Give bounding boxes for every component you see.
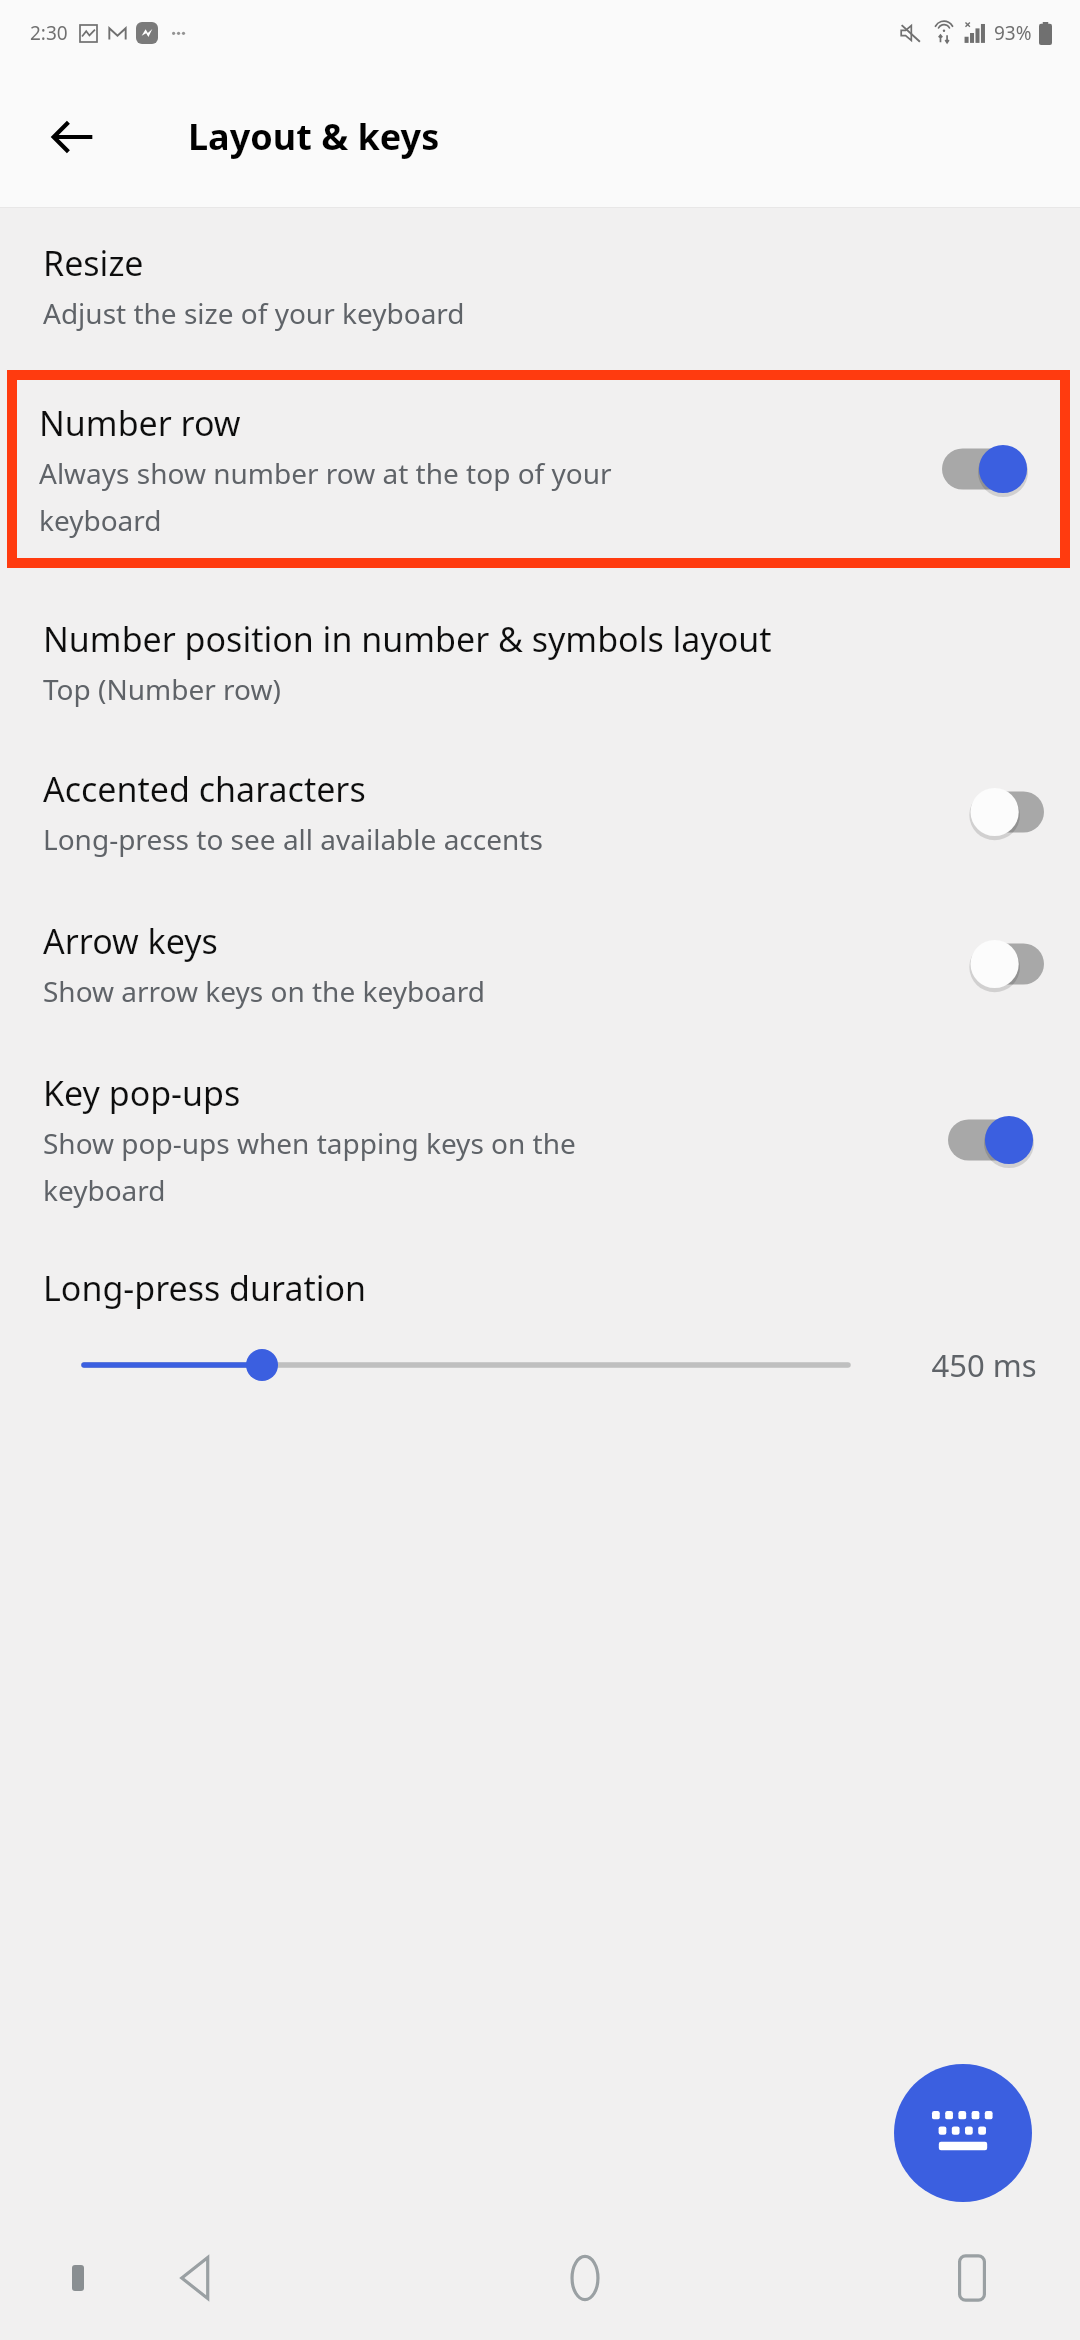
staticText: Show pop-ups when tapping keys on the ke… bbox=[43, 1124, 576, 1209]
button[interactable]: Toggle off bbox=[948, 779, 1044, 845]
button[interactable]: Back bbox=[26, 90, 120, 184]
button[interactable]: Back bbox=[150, 2230, 246, 2326]
staticText: Show arrow keys on the keyboard bbox=[43, 972, 486, 1010]
button[interactable]: Keyboard switcher bbox=[48, 2248, 108, 2308]
staticText: Long-press to see all available accents bbox=[43, 820, 543, 858]
button[interactable]: Long-press duration slider bbox=[84, 1337, 848, 1393]
button[interactable]: Toggle on bbox=[942, 436, 1038, 502]
staticText: Adjust the size of your keyboard bbox=[43, 294, 465, 332]
staticText: 2:30 bbox=[30, 20, 68, 46]
staticText: Layout & keys bbox=[188, 112, 440, 161]
staticText: 93% bbox=[994, 20, 1032, 46]
staticText: Always show number row at the top of you… bbox=[39, 454, 612, 539]
button[interactable]: Recents bbox=[924, 2230, 1020, 2326]
button[interactable]: Arrow keys bbox=[0, 918, 1080, 1010]
button[interactable]: Toggle on bbox=[948, 1107, 1044, 1173]
button[interactable]: Open keyboard bbox=[894, 2064, 1032, 2202]
staticText: Resize bbox=[43, 240, 144, 286]
staticText: Number row bbox=[39, 400, 241, 446]
button[interactable]: Resize bbox=[0, 240, 1080, 332]
button[interactable]: Number row bbox=[17, 380, 1060, 558]
button[interactable]: Accented characters bbox=[0, 766, 1080, 858]
button[interactable]: Toggle off bbox=[948, 931, 1044, 997]
staticText: 450 ms bbox=[910, 1344, 1058, 1386]
button[interactable]: Key pop-ups bbox=[0, 1070, 1080, 1209]
staticText: Long-press duration bbox=[43, 1265, 367, 1311]
staticText: Top (Number row) bbox=[43, 670, 281, 708]
staticText: Key pop-ups bbox=[43, 1070, 241, 1116]
staticText: Accented characters bbox=[43, 766, 366, 812]
button[interactable]: Number position in number & symbols layo… bbox=[0, 616, 1080, 708]
button[interactable]: Home bbox=[537, 2230, 633, 2326]
staticText: Arrow keys bbox=[43, 918, 218, 964]
staticText: Number position in number & symbols layo… bbox=[43, 616, 772, 662]
